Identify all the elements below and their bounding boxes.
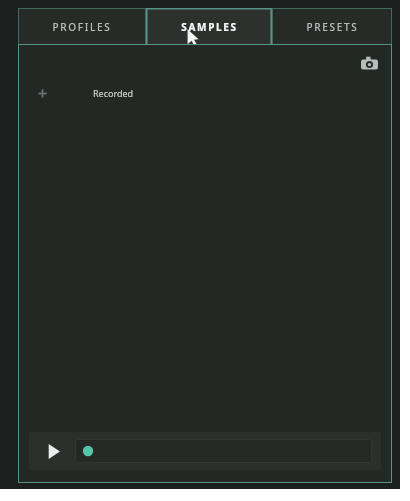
button[interactable]: SAMPLES [146, 8, 272, 46]
staticText: Recorded [93, 87, 134, 99]
button[interactable]: Play [40, 438, 66, 464]
button[interactable] [75, 439, 372, 463]
button[interactable]: PROFILES [18, 8, 146, 46]
button[interactable]: Snapshot [358, 52, 380, 74]
button[interactable]: Recorded [18, 82, 392, 104]
staticText: PROFILES [52, 20, 112, 34]
staticText: SAMPLES [181, 20, 238, 34]
staticText: PRESETS [306, 20, 359, 34]
button[interactable]: PRESETS [272, 8, 392, 46]
